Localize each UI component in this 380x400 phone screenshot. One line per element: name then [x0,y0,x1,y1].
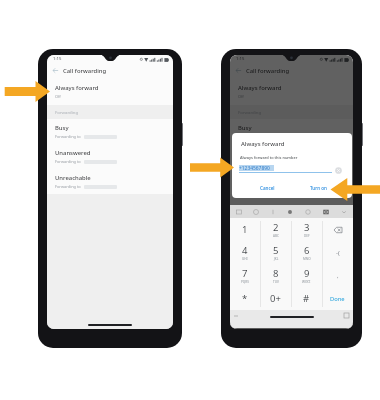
button[interactable]: # [291,287,322,310]
button[interactable]: 9 [291,264,322,287]
button[interactable]: Keyboard option [264,205,281,218]
staticText: 3 [304,221,310,234]
button[interactable]: Keyboard option [247,205,264,218]
button[interactable]: 7 [230,264,260,287]
button[interactable]: Keyboard option [335,205,353,218]
staticText: TUV [273,280,279,284]
staticText: Done [330,295,345,303]
button[interactable]: Always forward [47,78,173,105]
staticText: 1:15 [236,56,245,62]
staticText: Call forwarding [63,67,107,75]
staticText: Always forward [241,140,285,148]
staticText: Always forward [238,84,282,92]
button[interactable]: 4 [230,241,260,264]
button[interactable]: 2 [260,218,291,241]
staticText: 8 [273,267,279,280]
staticText: 6 [304,244,310,257]
button[interactable]: Keyboard option [299,205,317,218]
staticText: Forwarding to [55,134,81,139]
staticText: Forwarding to [238,159,264,164]
staticText: -( [336,249,340,257]
staticText: 1:15 [53,56,62,62]
staticText: , [337,272,339,280]
button[interactable]: 1 [230,218,260,241]
staticText: Busy [238,124,252,132]
button[interactable]: -( [322,241,353,264]
staticText: Busy [55,124,69,132]
staticText: Call forwarding [246,67,290,75]
button[interactable]: Back [230,63,353,78]
button[interactable]: 0+ [260,287,291,310]
staticText: JKL [274,257,279,261]
button[interactable]: 6 [291,241,322,264]
button[interactable]: Unanswered [230,144,353,169]
button[interactable]: Back [47,63,63,78]
button[interactable]: Delete [322,218,353,241]
staticText: Unreachable [55,174,91,182]
button[interactable]: * [230,287,260,310]
staticText: Off [55,94,61,99]
staticText: Forwarding to [55,159,81,164]
staticText: +1234567890 [239,165,270,172]
button[interactable]: 8 [260,264,291,287]
button[interactable]: Unreachable [47,169,173,194]
button[interactable]: Keyboard option [281,205,299,218]
button[interactable]: Turn on [303,180,333,196]
button[interactable]: Keyboard option [230,205,247,218]
staticText: 1 [242,223,248,236]
staticText: GHI [242,257,248,261]
staticText: Forwarding to [55,184,81,189]
staticText: 5 [273,244,279,257]
staticText: 2 [273,221,279,234]
staticText: 9 [304,267,310,280]
staticText: WXYZ [302,280,311,284]
staticText: DEF [304,234,310,238]
button[interactable]: Unreachable [230,169,353,194]
button[interactable]: Busy [47,119,173,144]
button[interactable]: 5 [260,241,291,264]
staticText: # [303,292,310,305]
button[interactable]: Busy [230,119,353,144]
staticText: MNO [303,257,311,261]
staticText: Unanswered [55,149,91,157]
other: Clear text [335,167,342,174]
staticText: Forwarding [55,109,79,115]
staticText: Forwarding [238,109,262,115]
staticText: Always forward [55,84,99,92]
button[interactable]: Unanswered [47,144,173,169]
button[interactable]: Keyboard option [317,205,335,218]
other: Delete [334,226,342,234]
staticText: Always forward to this number [240,155,298,160]
button[interactable]: Back [230,63,246,78]
staticText: Cancel [260,185,275,191]
button[interactable]: Cancel [252,180,282,196]
button[interactable]: Back [47,63,173,78]
staticText: Forwarding to [238,184,264,189]
staticText: 7 [242,267,248,280]
button[interactable]: Always forward [230,78,353,105]
staticText: ABC [273,234,279,238]
staticText: Turn on [310,185,327,191]
staticText: PQRS [241,280,249,284]
button[interactable]: , [322,264,353,287]
staticText: 0+ [270,292,281,305]
staticText: 4 [242,244,248,257]
staticText: Unanswered [238,149,274,157]
button[interactable]: Done [322,287,353,310]
staticText: * [242,292,248,305]
staticText: Off [238,94,244,99]
button[interactable]: 3 [291,218,322,241]
